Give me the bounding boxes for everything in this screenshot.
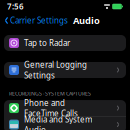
button[interactable]: General Logging Settings [4,62,126,78]
button[interactable]: Tap to Radar [4,35,126,51]
staticText: RECORDINGS · SYSTEM CAPTURES [9,90,91,97]
staticText: Audio [73,14,100,27]
button[interactable]: Media and System Audio [4,117,126,130]
button[interactable]: Carrier Settings [0,12,68,29]
staticText: General Logging Settings [24,59,87,81]
staticText: Tap to Radar [24,38,70,48]
staticText: Carrier Settings [10,15,68,26]
button[interactable]: Phone and FaceTime Calls [4,100,126,117]
staticText: 7:56 [7,1,24,12]
staticText: Phone and FaceTime Calls [24,97,78,119]
staticText: Media and System Audio [24,114,92,130]
